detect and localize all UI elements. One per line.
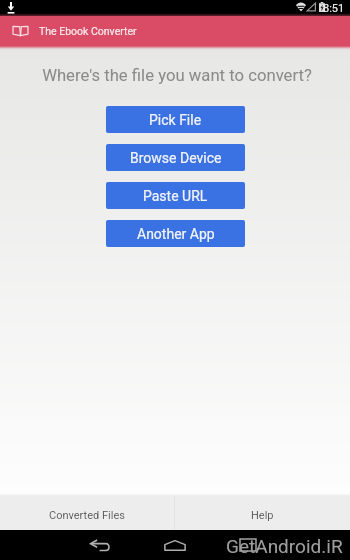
staticText: Browse Device [130,150,222,166]
button[interactable]: Paste URL [106,182,245,209]
button[interactable]: Pick File [106,106,245,133]
staticText: The Ebook Converter [39,25,137,37]
button[interactable]: Another App [106,220,245,247]
button[interactable]: Home [147,530,203,560]
staticText: Where's the file you want to convert? [42,66,312,86]
button[interactable]: Recent apps [220,530,276,560]
staticText: 8:51 [323,2,345,15]
staticText: Another App [137,226,215,242]
staticText: Converted Files [49,509,125,522]
button[interactable]: Back [72,530,128,560]
staticText: Help [251,509,274,522]
staticText: Paste URL [143,188,208,204]
button[interactable]: Help [175,496,350,530]
button[interactable]: Browse Device [106,144,245,171]
staticText: Pick File [149,112,202,128]
staticText: GetAndroid.iR [226,535,343,557]
button[interactable]: Converted Files [0,496,174,530]
